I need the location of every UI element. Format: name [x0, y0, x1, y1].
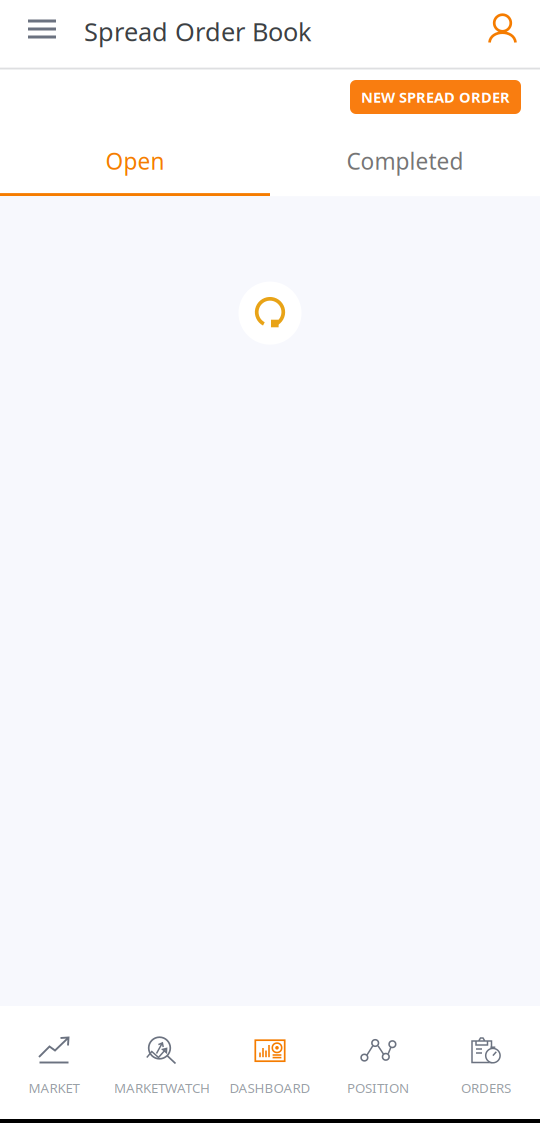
staticText: ORDERS — [461, 1079, 511, 1097]
staticText: POSITION — [347, 1079, 409, 1097]
button[interactable]: Menu — [0, 0, 84, 69]
staticText: Spread Order Book — [84, 15, 312, 48]
button[interactable]: Open — [0, 125, 270, 196]
button[interactable]: ORDERS — [432, 1006, 540, 1119]
button[interactable]: NEW SPREAD ORDER — [350, 80, 521, 114]
staticText: Completed — [346, 146, 463, 176]
staticText: DASHBOARD — [229, 1079, 310, 1097]
staticText: Open — [105, 146, 164, 176]
button[interactable]: MARKETWATCH — [108, 1006, 216, 1119]
staticText: NEW SPREAD ORDER — [361, 87, 510, 107]
button[interactable]: Account — [488, 0, 540, 70]
button[interactable]: DASHBOARD — [216, 1006, 324, 1119]
button[interactable]: Completed — [270, 125, 540, 196]
button[interactable]: MARKET — [0, 1006, 108, 1119]
button[interactable]: POSITION — [324, 1006, 432, 1119]
staticText: MARKET — [28, 1079, 79, 1097]
staticText: MARKETWATCH — [114, 1079, 210, 1097]
